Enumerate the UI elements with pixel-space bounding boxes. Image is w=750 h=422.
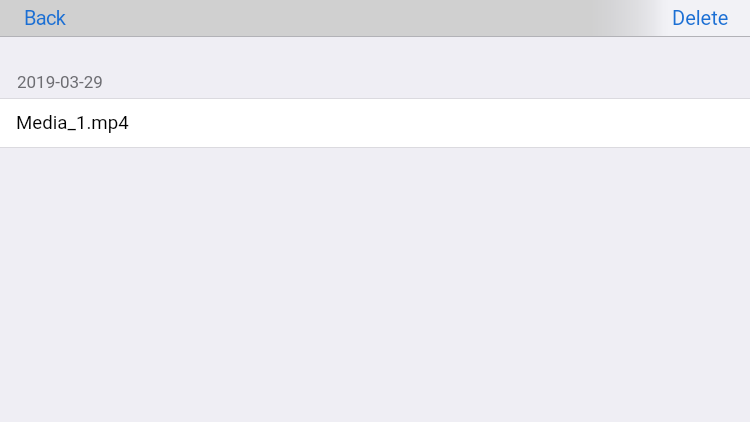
staticText: Media_1.mp4 (16, 112, 129, 134)
button[interactable]: Back (0, 0, 78, 36)
button[interactable]: Delete (660, 0, 750, 36)
staticText: Back (24, 6, 66, 29)
staticText: Delete (672, 6, 729, 29)
staticText: 2019-03-29 (17, 72, 103, 92)
button[interactable]: Media_1.mp4 (0, 99, 750, 147)
